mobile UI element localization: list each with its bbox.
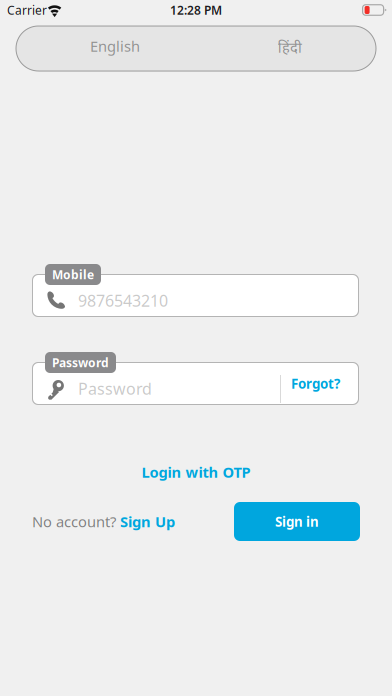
staticText: No account? [32,512,120,531]
button[interactable]: English [16,26,214,71]
button[interactable]: 9876543210 [32,274,359,317]
staticText: English [90,36,140,56]
staticText: Carrier [7,2,47,18]
staticText: Password [52,354,109,370]
button[interactable]: Sign in [234,502,360,541]
staticText: Mobile [52,266,94,282]
staticText: हिंदी [278,37,302,57]
staticText: 12:28 PM [170,2,222,18]
button[interactable]: Login with OTP [0,461,392,483]
staticText: Login with OTP [141,462,250,482]
button[interactable]: हिंदी [204,26,376,71]
button[interactable]: Forgot? [282,362,349,405]
staticText: 9876543210 [78,290,168,311]
button[interactable]: Sign Up [120,512,175,531]
staticText: Sign Up [120,512,175,531]
staticText: Forgot? [291,375,340,392]
staticText: Sign in [275,513,319,530]
staticText: Password [78,378,152,399]
